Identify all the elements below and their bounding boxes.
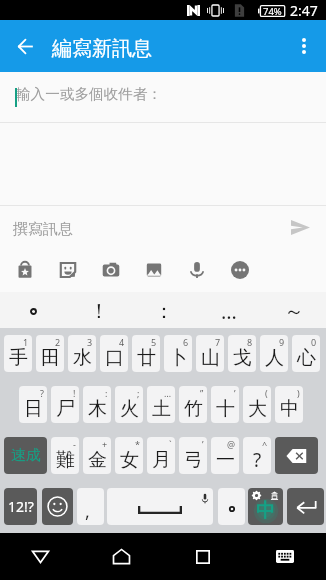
button[interactable]: 火 <box>115 386 143 423</box>
button[interactable]: 一 <box>211 437 239 474</box>
button[interactable]: 手 <box>4 335 32 372</box>
staticText: 女 <box>120 448 139 472</box>
staticText: 田 <box>41 346 60 370</box>
staticText: 月 <box>152 448 171 472</box>
button[interactable]: 12!? <box>4 488 37 525</box>
staticText: 尸 <box>56 397 75 421</box>
button[interactable]: 口 <box>100 335 128 372</box>
button[interactable]: 土 <box>147 386 175 423</box>
button[interactable]: 田 <box>36 335 64 372</box>
button[interactable]: 大 <box>243 386 271 423</box>
button[interactable]: 日 <box>19 386 47 423</box>
staticText: ^ <box>262 438 268 450</box>
staticText: ; <box>137 387 140 399</box>
staticText: 輸入一或多個收件者： <box>16 85 162 103</box>
staticText: 中 <box>256 499 275 523</box>
button[interactable]: 心 <box>292 335 320 372</box>
staticText: ： <box>154 299 174 324</box>
staticText: 3 <box>87 336 93 348</box>
button[interactable]: 尸 <box>51 386 79 423</box>
button[interactable]: 竹 <box>179 386 207 423</box>
staticText: 土 <box>152 397 171 421</box>
button[interactable] <box>0 292 66 328</box>
button[interactable]: 女 <box>115 437 143 474</box>
staticText: ` <box>169 438 172 450</box>
staticText: 一 <box>216 448 235 472</box>
button[interactable]: More options <box>282 24 326 68</box>
button[interactable]: Voice <box>175 248 218 292</box>
button[interactable]: 中 <box>275 386 303 423</box>
staticText: 竹 <box>184 397 203 421</box>
button[interactable]: Store <box>3 248 46 292</box>
button[interactable]: More <box>218 248 261 292</box>
staticText: ！ <box>89 299 109 324</box>
button[interactable]: , <box>77 488 104 525</box>
staticText: 廿 <box>137 346 156 370</box>
button[interactable]: Back <box>3 24 47 68</box>
button[interactable]: Switch keyboard <box>244 533 326 580</box>
staticText: 戈 <box>233 346 252 370</box>
button[interactable]: 弓 <box>179 437 207 474</box>
staticText: 7 <box>215 336 221 348</box>
staticText: ～ <box>284 299 304 324</box>
staticText: … <box>164 387 172 399</box>
staticText: ) <box>297 387 300 399</box>
staticText: 1 <box>23 336 29 348</box>
staticText: 12!? <box>8 497 34 516</box>
button[interactable]: 人 <box>260 335 288 372</box>
button[interactable]: 木 <box>83 386 111 423</box>
staticText: , <box>85 499 90 524</box>
button[interactable]: 難 <box>51 437 79 474</box>
button[interactable]: 月 <box>147 437 175 474</box>
button[interactable]: 廿 <box>132 335 160 372</box>
button[interactable]: Emoji <box>42 488 73 525</box>
staticText: … <box>221 298 237 325</box>
staticText: + <box>102 438 108 450</box>
button[interactable]: Camera <box>89 248 132 292</box>
button[interactable]: ！ <box>66 292 131 328</box>
button[interactable]: Backspace <box>275 437 318 474</box>
button[interactable]: Space <box>107 488 213 525</box>
staticText: 2:47 <box>290 1 318 20</box>
staticText: 6 <box>183 336 189 348</box>
staticText: 金 <box>88 448 107 472</box>
button[interactable]: Stickers <box>46 248 89 292</box>
button[interactable]: Full stop <box>218 488 245 525</box>
staticText: 撰寫訊息 <box>13 220 73 239</box>
staticText: ’ <box>234 387 236 399</box>
staticText: 8 <box>247 336 253 348</box>
staticText: 編寫新訊息 <box>52 36 152 61</box>
button[interactable]: Enter <box>287 488 324 525</box>
button[interactable]: ～ <box>261 292 326 328</box>
button[interactable]: … <box>196 292 261 328</box>
staticText: 2 <box>55 336 61 348</box>
staticText: 日 <box>24 397 43 421</box>
staticText: 卜 <box>169 346 188 370</box>
button[interactable]: Switch language <box>248 488 283 525</box>
staticText: 5 <box>151 336 157 348</box>
staticText: 火 <box>120 397 139 421</box>
staticText: 心 <box>297 346 316 370</box>
staticText: : <box>105 387 108 399</box>
staticText: ’ <box>202 438 204 450</box>
button[interactable]: 卜 <box>164 335 192 372</box>
button[interactable]: 輸入一或多個收件者： <box>0 72 326 123</box>
staticText: 4 <box>119 336 125 348</box>
button[interactable]: Send <box>282 209 318 245</box>
button[interactable]: Hide keyboard <box>0 533 81 580</box>
button[interactable]: 水 <box>68 335 96 372</box>
staticText: ” <box>200 387 204 399</box>
button[interactable]: 戈 <box>228 335 256 372</box>
button[interactable]: 金 <box>83 437 111 474</box>
button[interactable]: ： <box>131 292 196 328</box>
button[interactable]: Home <box>81 533 162 580</box>
button[interactable]: Recent apps <box>162 533 244 580</box>
button[interactable]: 十 <box>211 386 239 423</box>
staticText: 人 <box>265 346 284 370</box>
button[interactable]: ? <box>243 437 271 474</box>
button[interactable]: 速成 <box>4 437 47 474</box>
button[interactable]: 山 <box>196 335 224 372</box>
staticText: 口 <box>105 346 124 370</box>
button[interactable]: Gallery <box>132 248 175 292</box>
staticText: 木 <box>88 397 107 421</box>
